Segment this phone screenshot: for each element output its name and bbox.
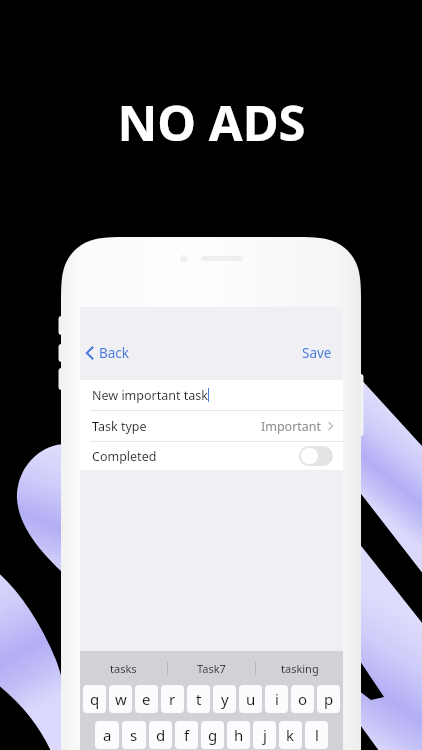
button[interactable]: w bbox=[109, 685, 132, 713]
button[interactable]: q bbox=[83, 685, 106, 713]
staticText: Completed bbox=[92, 448, 157, 465]
button[interactable]: tasking bbox=[256, 661, 343, 676]
button[interactable]: Save bbox=[295, 341, 339, 365]
staticText: New important task bbox=[92, 387, 208, 404]
button[interactable]: t bbox=[187, 685, 210, 713]
staticText: j bbox=[263, 725, 267, 745]
button[interactable]: Task type bbox=[80, 411, 343, 441]
button[interactable]: j bbox=[253, 721, 276, 749]
staticText: w bbox=[115, 689, 127, 709]
button[interactable]: k bbox=[279, 721, 302, 749]
button[interactable]: u bbox=[239, 685, 262, 713]
staticText: e bbox=[142, 689, 151, 709]
staticText: k bbox=[286, 725, 295, 745]
button[interactable]: d bbox=[149, 721, 172, 749]
staticText: r bbox=[169, 689, 176, 709]
staticText: tasks bbox=[110, 661, 137, 676]
staticText: Task type bbox=[92, 418, 147, 435]
staticText: Save bbox=[302, 344, 332, 362]
staticText: s bbox=[130, 725, 138, 745]
staticText: l bbox=[315, 725, 319, 745]
staticText: q bbox=[90, 689, 100, 709]
staticText: p bbox=[324, 689, 334, 709]
staticText: f bbox=[184, 725, 190, 745]
staticText: Task7 bbox=[197, 661, 226, 676]
button[interactable]: Back bbox=[84, 341, 132, 365]
button[interactable]: r bbox=[161, 685, 184, 713]
staticText: y bbox=[221, 689, 229, 709]
button[interactable]: e bbox=[135, 685, 158, 713]
button[interactable]: New important task bbox=[80, 380, 343, 410]
staticText: Important bbox=[261, 418, 322, 435]
button[interactable]: p bbox=[317, 685, 340, 713]
button[interactable]: i bbox=[265, 685, 288, 713]
button[interactable]: l bbox=[305, 721, 328, 749]
button[interactable]: s bbox=[122, 721, 146, 749]
button[interactable]: tasks bbox=[80, 661, 167, 676]
staticText: g bbox=[208, 725, 218, 745]
staticText: t bbox=[196, 689, 202, 709]
button[interactable]: f bbox=[175, 721, 198, 749]
button[interactable]: a bbox=[95, 721, 119, 749]
button[interactable]: Completed toggle bbox=[299, 446, 333, 466]
staticText: d bbox=[156, 725, 166, 745]
staticText: h bbox=[234, 725, 244, 745]
staticText: o bbox=[298, 689, 308, 709]
staticText: a bbox=[103, 725, 112, 745]
staticText: Back bbox=[99, 344, 130, 362]
staticText: tasking bbox=[281, 661, 319, 676]
staticText: NO ADS bbox=[117, 89, 306, 156]
staticText: i bbox=[275, 689, 279, 709]
button[interactable]: Task7 bbox=[168, 661, 255, 676]
button[interactable]: Completed bbox=[80, 442, 343, 470]
button[interactable]: h bbox=[227, 721, 250, 749]
staticText: u bbox=[246, 689, 256, 709]
button[interactable]: g bbox=[201, 721, 224, 749]
button[interactable]: y bbox=[213, 685, 236, 713]
button[interactable]: o bbox=[291, 685, 314, 713]
